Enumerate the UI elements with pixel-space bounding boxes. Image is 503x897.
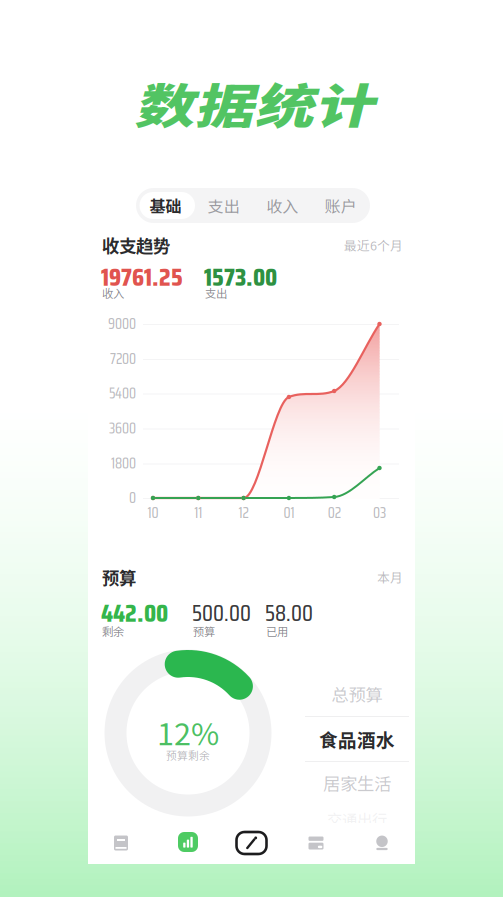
staticText: 0 — [129, 486, 136, 510]
staticText: 基础 — [149, 194, 181, 217]
staticText: 442.00 — [101, 593, 168, 633]
staticText: 剩余 — [102, 623, 124, 639]
staticText: 12% — [157, 710, 219, 754]
staticText: 10 — [147, 501, 158, 525]
staticText: 500.00 — [192, 595, 251, 631]
button[interactable]: 支出 — [194, 191, 253, 220]
staticText: 支出 — [205, 285, 227, 301]
staticText: 数据统计 — [152, 66, 356, 140]
staticText: 3600 — [109, 417, 136, 440]
button[interactable]: 记一笔 — [220, 823, 282, 863]
staticText: 收支趋势 — [102, 232, 170, 258]
staticText: 预算剩余 — [166, 747, 210, 763]
staticText: 1800 — [111, 452, 136, 475]
button[interactable]: 账户 — [285, 823, 347, 863]
button[interactable]: 我的 — [351, 823, 413, 863]
button[interactable]: 食品酒水 — [305, 717, 409, 761]
staticText: 58.00 — [265, 595, 313, 631]
staticText: 7200 — [110, 347, 136, 371]
button[interactable]: 账本 — [90, 823, 152, 863]
button[interactable]: 居家生活 — [305, 761, 409, 805]
button[interactable]: 账户 — [311, 191, 370, 220]
staticText: 食品酒水 — [319, 725, 395, 752]
staticText: 03 — [373, 501, 386, 525]
staticText: 最近6个月 — [344, 236, 403, 254]
button[interactable]: 收入 — [253, 191, 311, 220]
button[interactable]: 总预算 — [305, 672, 409, 716]
staticText: 交通出行 — [327, 808, 387, 830]
staticText: 预算 — [193, 623, 215, 639]
button[interactable]: 基础 — [136, 191, 194, 220]
staticText: 02 — [328, 501, 341, 525]
staticText: 11 — [194, 501, 202, 525]
staticText: 收入 — [266, 194, 298, 217]
staticText: 居家生活 — [323, 770, 391, 796]
staticText: 总预算 — [331, 681, 382, 707]
staticText: 收入 — [102, 285, 124, 301]
staticText: 19761.25 — [101, 257, 183, 297]
staticText: 已用 — [266, 623, 288, 639]
staticText: 01 — [283, 501, 294, 525]
staticText: 账户 — [325, 194, 357, 217]
staticText: 9000 — [108, 312, 136, 336]
staticText: 预算 — [102, 564, 136, 590]
staticText: 1573.00 — [204, 257, 277, 297]
staticText: 5400 — [109, 382, 136, 405]
button[interactable]: 统计 — [157, 822, 219, 862]
staticText: 12 — [239, 501, 249, 525]
staticText: 本月 — [377, 568, 403, 586]
staticText: 支出 — [208, 194, 240, 217]
